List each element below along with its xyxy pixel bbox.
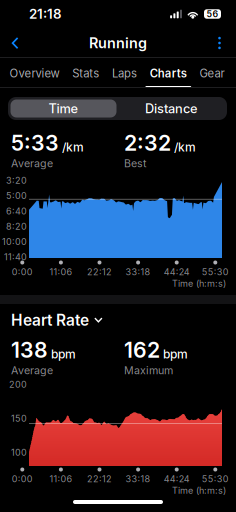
staticText: 6:40 xyxy=(6,206,27,217)
staticText: /km xyxy=(62,140,84,154)
staticText: 11:40 xyxy=(4,251,27,262)
staticText: 22:12 xyxy=(87,473,112,484)
staticText: 5:00 xyxy=(6,190,27,201)
staticText: Heart Rate xyxy=(11,311,89,329)
staticText: Time (h:m:s) xyxy=(172,278,226,289)
button[interactable]: Heart Rate xyxy=(11,312,103,328)
staticText: 150 xyxy=(11,413,27,424)
button[interactable]: Charts xyxy=(143,59,193,88)
staticText: Stats xyxy=(72,67,99,80)
staticText: Running xyxy=(89,34,147,52)
button[interactable]: Gear xyxy=(193,59,231,88)
staticText: Average xyxy=(11,364,53,377)
staticText: Laps xyxy=(112,67,137,80)
staticText: 0:00 xyxy=(12,473,33,484)
staticText: 21:18 xyxy=(29,6,62,22)
button[interactable]: Stats xyxy=(66,59,106,88)
staticText: bpm xyxy=(163,347,188,361)
staticText: /km xyxy=(174,140,196,154)
staticText: Time xyxy=(48,101,78,116)
staticText: 138 xyxy=(11,337,48,363)
staticText: 0:00 xyxy=(12,266,33,277)
staticText: 8:20 xyxy=(6,221,27,232)
staticText: 22:12 xyxy=(87,266,112,277)
staticText: Maximum xyxy=(124,364,173,377)
staticText: Best xyxy=(124,157,146,170)
staticText: bpm xyxy=(51,347,76,361)
button[interactable]: Laps xyxy=(106,59,143,88)
staticText: 11:06 xyxy=(49,473,72,484)
staticText: 11:06 xyxy=(49,266,72,277)
staticText: 33:18 xyxy=(126,473,151,484)
staticText: 100 xyxy=(11,447,27,458)
staticText: 33:18 xyxy=(126,266,151,277)
staticText: Average xyxy=(11,157,53,170)
staticText: Overview xyxy=(9,67,59,80)
staticText: Distance xyxy=(145,101,198,116)
button[interactable]: More options xyxy=(207,28,232,58)
staticText: 3:20 xyxy=(6,175,27,186)
staticText: Time (h:m:s) xyxy=(172,485,226,496)
staticText: 162 xyxy=(124,337,160,363)
button[interactable]: Back xyxy=(4,28,26,58)
staticText: 55:30 xyxy=(202,473,229,484)
staticText: 5:33 xyxy=(11,130,59,156)
button[interactable]: Time xyxy=(10,99,116,117)
button[interactable]: Distance xyxy=(118,99,224,117)
staticText: Gear xyxy=(200,67,225,80)
staticText: 44:24 xyxy=(164,473,190,484)
staticText: 44:24 xyxy=(164,266,190,277)
staticText: 55:30 xyxy=(202,266,229,277)
staticText: 200 xyxy=(9,379,27,390)
button[interactable]: Overview xyxy=(3,59,66,88)
staticText: Charts xyxy=(150,67,187,80)
staticText: 2:32 xyxy=(124,130,171,156)
staticText: 10:00 xyxy=(2,236,27,247)
staticText: 56 xyxy=(206,9,218,19)
